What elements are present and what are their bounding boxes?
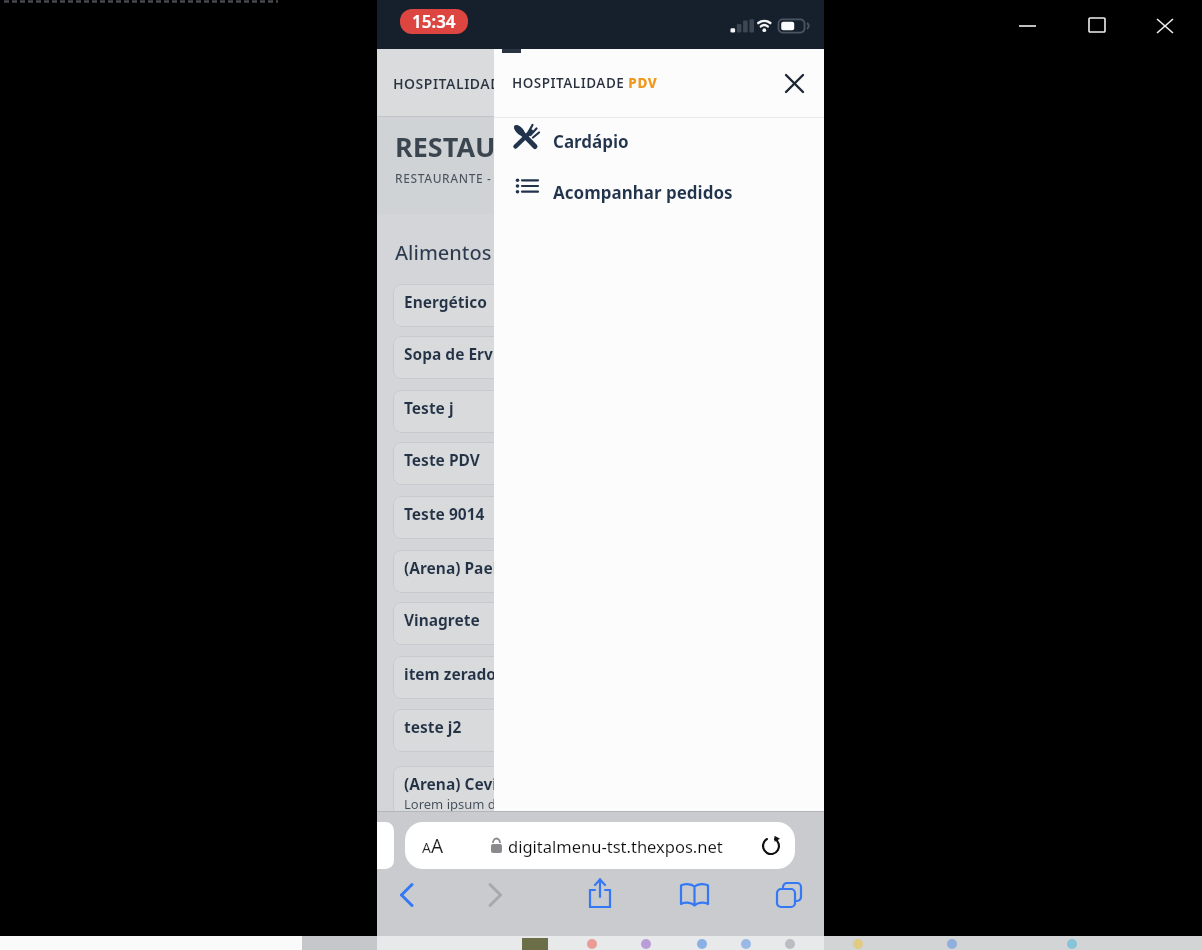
- staticText: 15:34: [412, 10, 456, 33]
- staticText: HOSPITALIDADE: [393, 74, 510, 93]
- staticText: Lorem ipsum dolor: [404, 795, 521, 813]
- staticText: Cardápio: [553, 130, 629, 153]
- button[interactable]: AA: [405, 822, 795, 869]
- button[interactable]: Cardápio: [500, 120, 824, 162]
- staticText: Teste 9014: [404, 503, 485, 524]
- staticText: Alimentos: [395, 239, 492, 266]
- button[interactable]: Teste PDV: [393, 442, 683, 485]
- button[interactable]: [394, 882, 422, 910]
- staticText: HOSPITALIDADE PDV: [512, 74, 658, 92]
- button[interactable]: [678, 882, 712, 910]
- button[interactable]: Teste 9014: [393, 496, 683, 539]
- staticText: Teste j: [404, 397, 454, 418]
- button[interactable]: 15:34: [400, 9, 468, 34]
- staticText: item zerado: [404, 663, 497, 684]
- button[interactable]: Energético: [393, 284, 683, 327]
- button[interactable]: teste j2: [393, 709, 683, 752]
- staticText: digitalmenu-tst.thexpos.net: [508, 835, 723, 857]
- staticText: AA: [422, 833, 444, 859]
- button[interactable]: (Arena) Paella: [393, 550, 683, 593]
- staticText: RESTAURANTE - TESTE: [395, 170, 532, 186]
- staticText: Teste PDV: [404, 449, 480, 470]
- staticText: RESTAURANTE: [395, 128, 585, 165]
- button[interactable]: Acompanhar pedidos: [500, 171, 824, 213]
- button[interactable]: Sopa de Ervilha: [393, 336, 683, 379]
- button[interactable]: (Arena) Ceviche: [393, 766, 683, 836]
- staticText: (Arena) Ceviche: [404, 773, 525, 794]
- button[interactable]: [774, 880, 806, 912]
- button[interactable]: [480, 882, 508, 910]
- button[interactable]: Vinagrete: [393, 602, 683, 645]
- button[interactable]: [782, 71, 807, 96]
- button[interactable]: [760, 835, 782, 857]
- staticText: Energético: [404, 291, 487, 312]
- staticText: Sopa de Ervilha: [404, 343, 522, 364]
- staticText: Acompanhar pedidos: [553, 181, 733, 204]
- button[interactable]: Teste j: [393, 390, 683, 433]
- staticText: teste j2: [404, 716, 462, 737]
- button[interactable]: item zerado: [393, 656, 683, 699]
- staticText: (Arena) Paella: [404, 557, 512, 578]
- staticText: Vinagrete: [404, 609, 480, 630]
- button[interactable]: [586, 877, 616, 913]
